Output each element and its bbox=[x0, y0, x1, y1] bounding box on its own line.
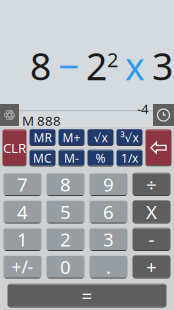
button[interactable]: - bbox=[132, 227, 170, 251]
button[interactable]: . bbox=[89, 255, 127, 278]
button[interactable]: 4 bbox=[3, 200, 41, 223]
button[interactable]: 7 bbox=[3, 172, 41, 196]
button[interactable]: √x bbox=[87, 129, 113, 146]
staticText: M+ bbox=[62, 129, 80, 145]
button[interactable]: 1/x bbox=[116, 149, 142, 166]
staticText: M- bbox=[64, 150, 79, 166]
staticText: 8 bbox=[60, 172, 71, 197]
staticText: MR bbox=[33, 129, 51, 145]
button[interactable]: Settings bbox=[0, 104, 19, 126]
staticText: ³√x bbox=[120, 129, 138, 145]
staticText: % bbox=[95, 150, 105, 166]
staticText: 1/x bbox=[121, 150, 138, 166]
staticText: 1 bbox=[17, 227, 28, 252]
staticText: ÷ bbox=[146, 172, 157, 197]
staticText: − bbox=[58, 41, 79, 91]
button[interactable]: = bbox=[7, 283, 166, 307]
button[interactable]: 1 bbox=[3, 227, 41, 251]
staticText: 7 bbox=[17, 172, 28, 197]
staticText: +/- bbox=[11, 255, 33, 278]
staticText: 0 bbox=[60, 254, 71, 279]
staticText: = bbox=[81, 283, 92, 308]
button[interactable]: 8 bbox=[46, 172, 84, 196]
staticText: -4 bbox=[137, 100, 149, 117]
button[interactable]: History bbox=[153, 104, 174, 126]
staticText: 22 bbox=[86, 41, 118, 91]
button[interactable]: M- bbox=[58, 149, 84, 166]
staticText: CLR bbox=[3, 139, 26, 157]
button[interactable]: +/- bbox=[3, 255, 41, 278]
button[interactable]: 2 bbox=[46, 227, 84, 251]
button[interactable]: MC bbox=[29, 149, 55, 166]
button[interactable]: 0 bbox=[46, 255, 84, 278]
staticText: X bbox=[146, 199, 157, 224]
staticText: 3 bbox=[152, 41, 173, 91]
button[interactable]: 3 bbox=[89, 227, 127, 251]
staticText: 2 bbox=[60, 227, 71, 252]
staticText: 4 bbox=[17, 199, 28, 224]
button[interactable]: 6 bbox=[89, 200, 127, 223]
button[interactable]: Backspace bbox=[145, 129, 171, 166]
button[interactable]: % bbox=[87, 149, 113, 166]
button[interactable]: ³√x bbox=[116, 129, 142, 146]
button[interactable]: + bbox=[132, 255, 170, 278]
staticText: 3 bbox=[103, 227, 114, 252]
staticText: + bbox=[146, 254, 157, 279]
button[interactable]: CLR bbox=[2, 129, 26, 166]
staticText: - bbox=[148, 227, 154, 252]
staticText: . bbox=[106, 254, 111, 279]
staticText: 8 bbox=[30, 41, 51, 91]
staticText: MC bbox=[33, 150, 52, 166]
staticText: M 888 bbox=[22, 112, 61, 129]
staticText: x bbox=[125, 41, 145, 91]
button[interactable]: M+ bbox=[58, 129, 84, 146]
button[interactable]: 9 bbox=[89, 172, 127, 196]
staticText: 9 bbox=[103, 172, 114, 197]
button[interactable]: X bbox=[132, 200, 170, 223]
button[interactable]: 5 bbox=[46, 200, 84, 223]
button[interactable]: ÷ bbox=[132, 172, 170, 196]
staticText: 6 bbox=[103, 199, 114, 224]
staticText: 5 bbox=[60, 199, 71, 224]
button[interactable]: MR bbox=[29, 129, 55, 146]
staticText: √x bbox=[93, 129, 107, 145]
